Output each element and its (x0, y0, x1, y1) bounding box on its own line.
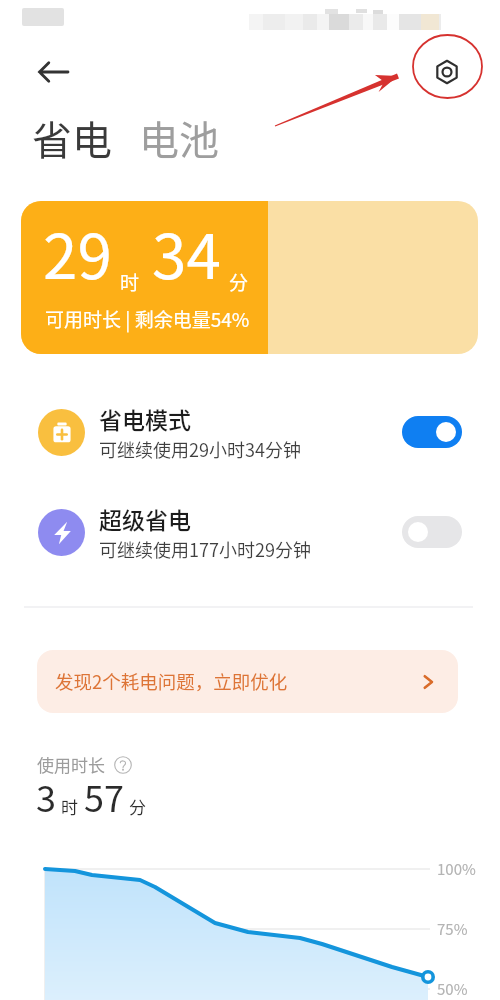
button[interactable]: 29 (21, 201, 478, 354)
button[interactable]: 省电 (32, 109, 112, 167)
staticText: 29 (43, 207, 112, 297)
button[interactable]: 发现2个耗电问题，立即优化 (37, 650, 458, 713)
button[interactable]: Turn off (402, 416, 462, 448)
button[interactable]: Turn on (402, 516, 462, 548)
staticText: 50% (437, 978, 468, 1000)
button[interactable]: 省电模式 (0, 402, 500, 462)
staticText: 可继续使用177小时29分钟 (99, 536, 311, 562)
staticText: 可继续使用29小时34分钟 (99, 436, 301, 462)
button[interactable]: Settings (412, 41, 482, 103)
staticText: 时 (61, 794, 78, 819)
staticText: 发现2个耗电问题，立即优化 (55, 668, 419, 695)
staticText: 省电 (32, 109, 112, 167)
staticText: 省电模式 (99, 402, 191, 435)
staticText: 100% (437, 858, 476, 880)
staticText: 电池 (139, 109, 219, 167)
staticText: 34 (152, 207, 221, 297)
staticText: 时 (120, 268, 140, 296)
button[interactable]: 电池 (139, 109, 219, 167)
staticText: 超级省电 (99, 502, 191, 535)
staticText: 57 (84, 770, 124, 822)
staticText: 75% (437, 918, 468, 940)
button[interactable]: Back (26, 45, 80, 99)
button[interactable]: Help (114, 756, 132, 774)
staticText: 3 (36, 770, 56, 822)
staticText: 可用时长 | 剩余电量54% (45, 305, 250, 333)
staticText: 使用时长 (37, 752, 105, 777)
staticText: 分 (129, 794, 146, 819)
staticText: 分 (229, 268, 249, 296)
button[interactable]: 超级省电 (0, 502, 500, 562)
